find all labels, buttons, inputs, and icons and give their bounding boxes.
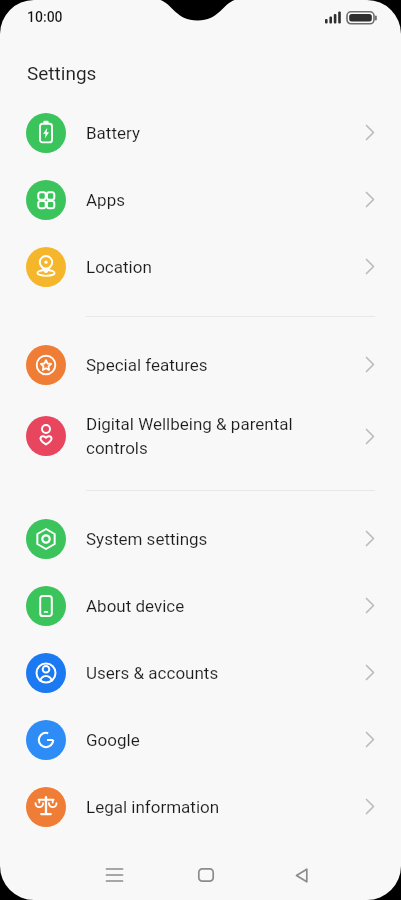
staticText: Battery — [86, 123, 365, 143]
button[interactable]: Location — [0, 233, 401, 300]
button[interactable]: Legal information — [0, 773, 401, 840]
button[interactable]: Apps — [0, 166, 401, 233]
staticText: Google — [86, 730, 365, 750]
staticText: Apps — [86, 190, 365, 210]
button[interactable]: About device — [0, 572, 401, 639]
button[interactable]: System settings — [0, 505, 401, 572]
button[interactable]: Users & accounts — [0, 639, 401, 706]
button[interactable] — [96, 857, 132, 893]
button[interactable]: Battery — [0, 99, 401, 166]
staticText: System settings — [86, 529, 365, 549]
button[interactable]: Special features — [0, 331, 401, 398]
staticText: Legal information — [86, 797, 365, 817]
button[interactable]: Google — [0, 706, 401, 773]
staticText: Users & accounts — [86, 663, 365, 683]
button[interactable] — [188, 857, 224, 893]
staticText: About device — [86, 596, 365, 616]
button[interactable]: Digital Wellbeing & parental controls — [0, 398, 401, 474]
button[interactable] — [283, 857, 319, 893]
staticText: Special features — [86, 355, 365, 375]
staticText: Settings — [27, 62, 97, 84]
staticText: Location — [86, 257, 365, 277]
staticText: Digital Wellbeing & parental controls — [86, 414, 365, 458]
staticText: 10:00 — [27, 9, 63, 25]
